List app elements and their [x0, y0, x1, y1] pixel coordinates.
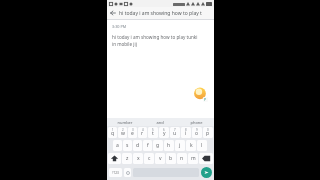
staticText: 3:30 PM [112, 24, 127, 29]
staticText: m [191, 155, 196, 162]
staticText: phone [190, 120, 203, 125]
staticText: hi today i am showing how to play tunki [112, 34, 198, 40]
button[interactable]: Back [107, 7, 119, 19]
staticText: i [185, 130, 187, 137]
staticText: f [147, 142, 149, 149]
staticText: v [159, 155, 162, 162]
staticText: e [131, 130, 134, 137]
staticText: 0 [207, 128, 209, 132]
staticText: 3 [132, 128, 134, 132]
staticText: q [111, 130, 115, 137]
button[interactable]: j [175, 140, 185, 151]
staticText: n [180, 155, 184, 162]
staticText: u [173, 130, 177, 137]
button[interactable]: Emoji [124, 168, 131, 177]
button[interactable]: phone [178, 118, 214, 126]
button[interactable]: s [123, 140, 132, 151]
staticText: j [179, 142, 181, 149]
staticText: w [121, 130, 125, 137]
button[interactable]: x [133, 153, 143, 164]
staticText: 9 [196, 128, 198, 132]
staticText: ?123 [112, 171, 119, 175]
staticText: c [148, 155, 151, 162]
button[interactable]: ?123 [109, 168, 122, 177]
staticText: z [126, 155, 129, 162]
button[interactable]: Shift [108, 153, 121, 164]
button[interactable]: 4 [138, 127, 147, 138]
button[interactable]: a [113, 140, 122, 151]
staticText: k [190, 142, 193, 149]
staticText: 8 [185, 128, 187, 132]
staticText: 4 [142, 128, 144, 132]
staticText: hi today i am showing how to play t [119, 10, 212, 17]
staticText: d [136, 142, 140, 149]
button[interactable]: 9 [192, 127, 202, 138]
staticText: 2 [122, 128, 124, 132]
staticText: 1 [112, 128, 114, 132]
button[interactable]: 1 [108, 127, 117, 138]
button[interactable]: 6 [159, 127, 169, 138]
staticText: h [167, 142, 171, 149]
button[interactable]: k [186, 140, 196, 151]
button[interactable]: n [177, 153, 187, 164]
button[interactable]: 8 [181, 127, 191, 138]
button[interactable]: m [188, 153, 198, 164]
staticText: o [195, 130, 199, 137]
staticText: P [204, 97, 207, 102]
button[interactable]: 0 [203, 127, 213, 138]
button[interactable]: and [142, 118, 178, 126]
button[interactable]: 5 [148, 127, 158, 138]
button[interactable]: number [107, 118, 142, 126]
button[interactable]: g [153, 140, 163, 151]
staticText: p [206, 130, 210, 137]
staticText: a [116, 142, 119, 149]
staticText: s [126, 142, 129, 149]
button[interactable]: h [164, 140, 174, 151]
button[interactable]: Send [201, 167, 212, 178]
staticText: l [201, 142, 203, 149]
staticText: number [117, 120, 133, 125]
staticText: y [163, 130, 166, 137]
staticText: 5 [152, 128, 154, 132]
button[interactable]: c [144, 153, 154, 164]
button[interactable]: 7 [170, 127, 180, 138]
button[interactable]: l [197, 140, 207, 151]
button[interactable]: v [155, 153, 165, 164]
staticText: g [156, 142, 160, 149]
staticText: b [169, 155, 173, 162]
staticText: in mobile jij [112, 41, 137, 47]
staticText: r [141, 130, 144, 137]
staticText: x [137, 155, 140, 162]
button[interactable]: Backspace [199, 153, 213, 164]
staticText: t [152, 130, 154, 137]
button[interactable]: 3 [128, 127, 137, 138]
button[interactable]: z [122, 153, 132, 164]
button[interactable]: 2 [118, 127, 127, 138]
button[interactable]: f [143, 140, 152, 151]
staticText: and [156, 120, 164, 125]
button[interactable]: b [166, 153, 176, 164]
staticText: 6 [163, 128, 165, 132]
staticText: 7 [174, 128, 176, 132]
button[interactable]: d [133, 140, 142, 151]
